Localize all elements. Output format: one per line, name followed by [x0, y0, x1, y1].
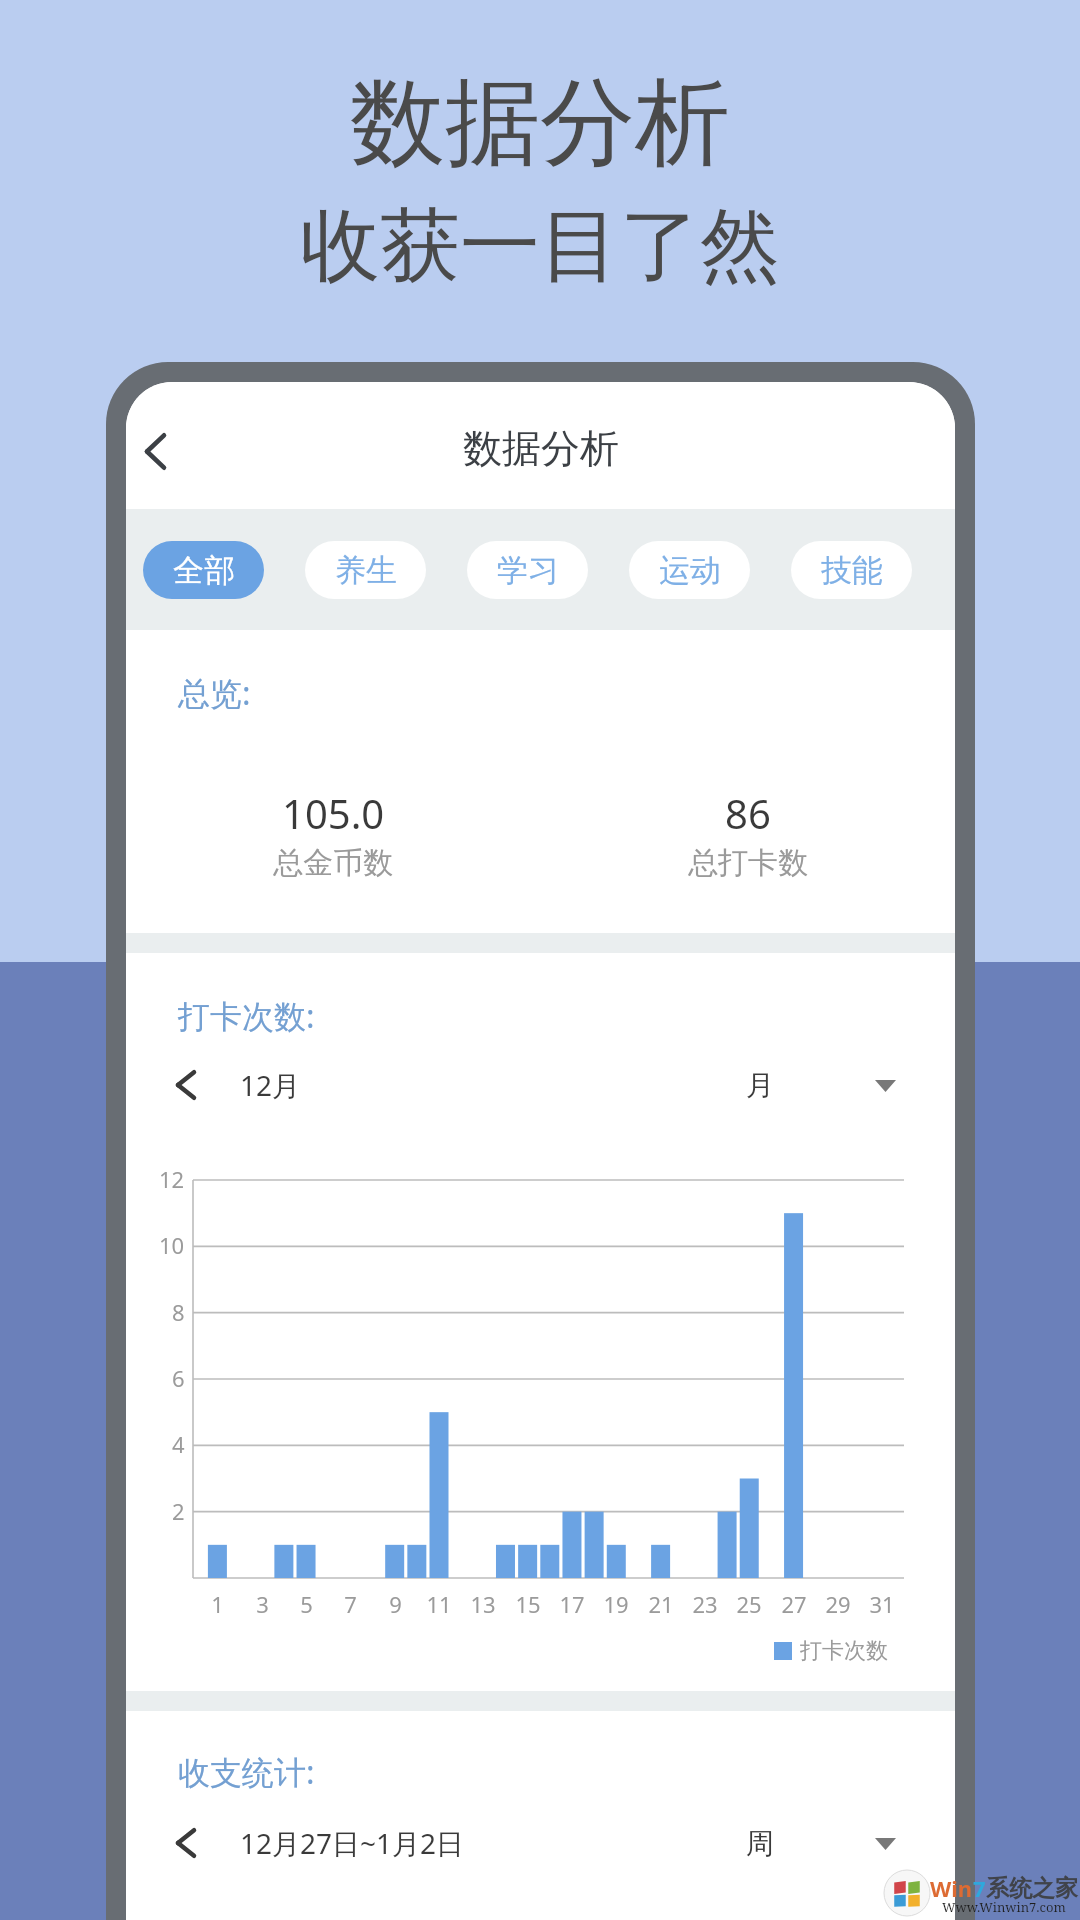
staticText: 数据分析	[463, 424, 619, 473]
staticText: Www.Winwin7.com	[942, 1898, 1066, 1916]
staticText: 技能	[821, 551, 883, 590]
staticText: 105.0	[282, 786, 385, 840]
staticText: 25	[736, 1589, 762, 1619]
staticText: 12	[159, 1164, 185, 1194]
staticText: 19	[603, 1589, 629, 1619]
staticText: 数据分析	[350, 64, 730, 184]
staticText: 12月27日~1月2日	[240, 1824, 465, 1862]
button[interactable]: Previous period	[163, 1820, 209, 1866]
staticText: 全部	[173, 551, 235, 590]
staticText: 7	[973, 1873, 986, 1903]
staticText: 总览:	[178, 671, 251, 715]
staticText: 运动	[659, 551, 721, 590]
staticText: 23	[692, 1589, 718, 1619]
staticText: 2	[172, 1496, 185, 1526]
button[interactable]: Previous period	[163, 1062, 209, 1108]
staticText: 打卡次数:	[178, 994, 315, 1038]
staticText: 12月	[240, 1066, 301, 1104]
staticText: 15	[515, 1589, 541, 1619]
staticText: 月	[746, 1068, 774, 1103]
staticText: 27	[781, 1589, 807, 1619]
staticText: 收获一目了然	[300, 196, 780, 297]
staticText: 周	[746, 1826, 774, 1861]
staticText: 3	[256, 1589, 269, 1619]
staticText: 5	[300, 1589, 313, 1619]
button[interactable]: 月	[746, 1068, 955, 1103]
button[interactable]: 技能	[791, 541, 912, 599]
staticText: 4	[172, 1429, 185, 1459]
staticText: 10	[159, 1230, 185, 1260]
button[interactable]: 全部	[143, 541, 264, 599]
staticText: 17	[559, 1589, 585, 1619]
staticText: 13	[470, 1589, 496, 1619]
staticText: 31	[869, 1589, 895, 1619]
staticText: 1	[211, 1589, 224, 1619]
button[interactable]: 养生	[305, 541, 426, 599]
staticText: 养生	[335, 551, 397, 590]
staticText: 29	[825, 1589, 851, 1619]
staticText: 总打卡数	[688, 844, 808, 882]
staticText: 9	[389, 1589, 402, 1619]
staticText: 11	[426, 1589, 452, 1619]
staticText: 总金币数	[273, 844, 393, 882]
staticText: 7	[344, 1589, 357, 1619]
staticText: 86	[725, 786, 771, 840]
button[interactable]: Back	[126, 415, 191, 487]
staticText: Win	[930, 1873, 973, 1903]
staticText: 学习	[497, 551, 559, 590]
staticText: 系统之家	[986, 1874, 1078, 1903]
staticText: 收支统计:	[178, 1750, 315, 1794]
staticText: 打卡次数	[800, 1637, 888, 1665]
button[interactable]: 运动	[629, 541, 750, 599]
button[interactable]: 学习	[467, 541, 588, 599]
staticText: 21	[648, 1589, 674, 1619]
staticText: 6	[172, 1363, 185, 1393]
button[interactable]: 周	[746, 1826, 955, 1861]
staticText: 8	[172, 1297, 185, 1327]
